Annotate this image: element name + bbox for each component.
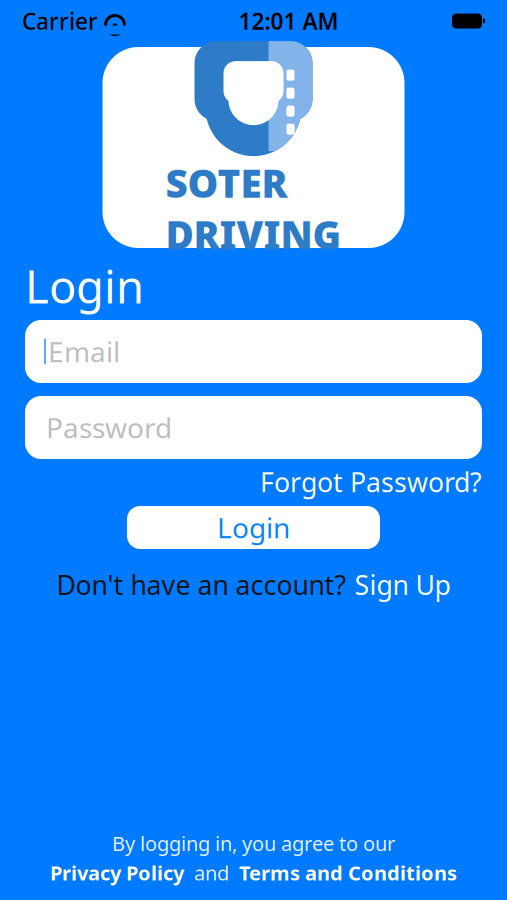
button[interactable]: Sign Up	[354, 567, 450, 602]
staticText: Password	[46, 409, 172, 446]
staticText: Login	[217, 509, 290, 546]
staticText: Email	[48, 333, 120, 370]
button[interactable]: Forgot Password?	[25, 468, 482, 496]
button[interactable]: Privacy Policy	[50, 859, 184, 886]
button[interactable]: Password	[25, 396, 482, 459]
button[interactable]: Terms and Conditions	[239, 859, 457, 886]
staticText: SOTER DRIVING	[165, 157, 341, 260]
staticText: Login	[25, 256, 144, 316]
staticText: Privacy Policy	[50, 859, 184, 886]
staticText: 12:01 AM	[238, 6, 338, 36]
staticText: Carrier	[22, 6, 98, 36]
staticText: Forgot Password?	[260, 464, 482, 500]
staticText: Sign Up	[354, 567, 450, 602]
staticText: and	[194, 859, 229, 886]
staticText: Don't have an account?	[56, 567, 346, 602]
staticText: Terms and Conditions	[239, 859, 457, 886]
button[interactable]: Email	[25, 320, 482, 383]
button[interactable]: Login	[127, 506, 380, 549]
staticText: By logging in, you agree to our	[112, 830, 395, 856]
